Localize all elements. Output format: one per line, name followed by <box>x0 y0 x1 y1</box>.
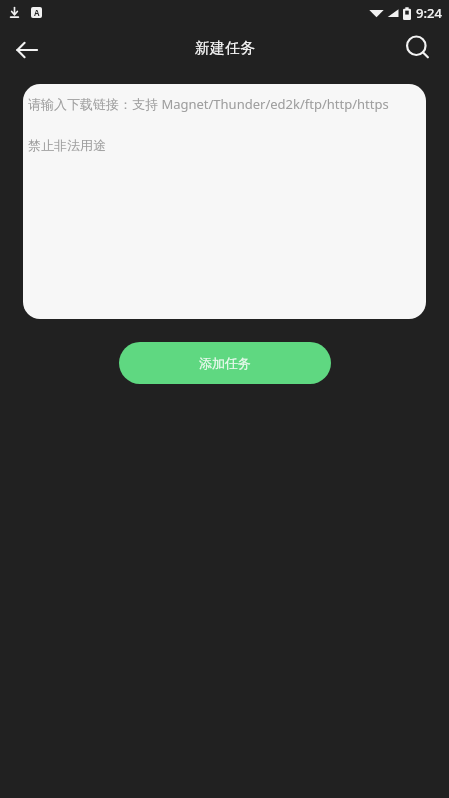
button[interactable]: Back <box>4 27 50 73</box>
button[interactable]: 添加任务 <box>119 342 331 384</box>
staticText: 请输入下载链接：支持 Magnet/Thunder/ed2k/ftp/http/… <box>28 95 389 113</box>
button[interactable]: 请输入下载链接：支持 Magnet/Thunder/ed2k/ftp/http/… <box>23 84 426 319</box>
staticText: 9:24 <box>416 4 442 22</box>
staticText: 禁止非法用途 <box>28 137 106 153</box>
staticText: 添加任务 <box>199 355 251 371</box>
staticText: A <box>34 7 40 18</box>
staticText: 新建任务 <box>195 39 255 58</box>
button[interactable]: Search <box>395 25 441 71</box>
